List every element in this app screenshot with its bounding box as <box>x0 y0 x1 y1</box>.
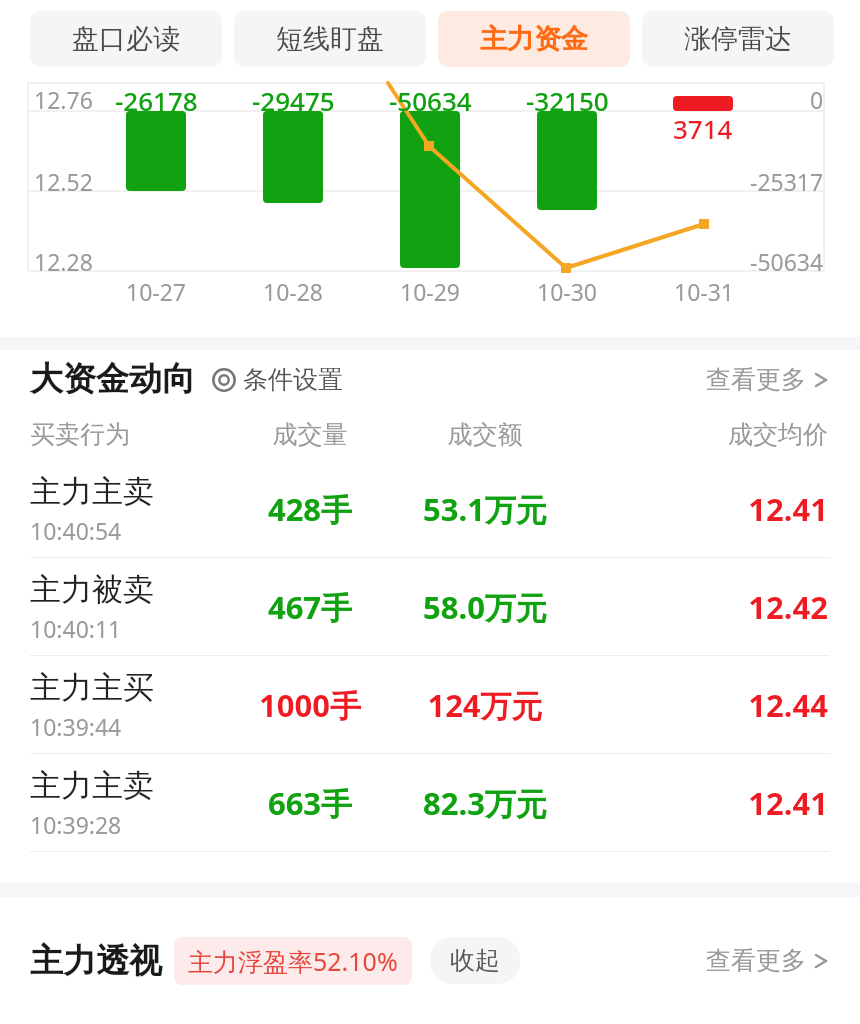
button[interactable]: 短线盯盘 <box>234 11 426 67</box>
button[interactable]: 涨停雷达 <box>642 11 834 67</box>
staticText: 成交量 <box>230 419 390 450</box>
staticText: 10:40:54 <box>30 515 122 546</box>
staticText: 查看更多 <box>706 945 806 976</box>
button[interactable]: 查看更多 <box>706 945 830 976</box>
staticText: -50634 <box>389 83 472 118</box>
button[interactable]: 主力浮盈率52.10% <box>174 937 412 985</box>
staticText: 12.52 <box>34 166 93 197</box>
staticText: 124万元 <box>390 684 580 726</box>
button[interactable]: 条件设置 <box>211 364 343 395</box>
staticText: 主力主卖 <box>30 766 154 805</box>
button[interactable]: 查看更多 <box>706 364 830 395</box>
staticText: -29475 <box>252 83 335 118</box>
staticText: 短线盯盘 <box>276 22 384 56</box>
staticText: 成交额 <box>390 419 580 450</box>
button[interactable]: 主力主买 <box>0 656 860 754</box>
button[interactable]: 主力被卖 <box>0 558 860 656</box>
staticText: 663手 <box>230 782 390 824</box>
staticText: -25317 <box>750 166 824 197</box>
staticText: 58.0万元 <box>390 586 580 628</box>
staticText: 10:39:28 <box>30 809 122 840</box>
staticText: -26178 <box>115 83 198 118</box>
staticText: -32150 <box>526 83 609 118</box>
staticText: 10-29 <box>400 276 461 307</box>
staticText: 12.76 <box>34 84 93 115</box>
staticText: 收起 <box>450 945 500 976</box>
staticText: 53.1万元 <box>390 488 580 530</box>
staticText: 12.28 <box>34 246 93 277</box>
staticText: 10-31 <box>674 276 735 307</box>
button[interactable]: 主力资金 <box>438 11 630 67</box>
staticText: 3714 <box>673 111 733 146</box>
staticText: 主力浮盈率52.10% <box>188 944 398 978</box>
staticText: 查看更多 <box>706 364 806 395</box>
staticText: 主力被卖 <box>30 570 154 609</box>
staticText: 1000手 <box>230 684 390 726</box>
other: More <box>814 953 830 969</box>
staticText: 10:39:44 <box>30 711 122 742</box>
staticText: 成交均价 <box>580 419 828 450</box>
button[interactable]: 盘口必读 <box>30 11 222 67</box>
button[interactable]: 收起 <box>430 937 520 984</box>
button[interactable]: 主力主卖 <box>0 754 860 852</box>
staticText: 467手 <box>230 586 390 628</box>
staticText: 主力透视 <box>30 940 162 982</box>
staticText: 12.44 <box>580 684 828 726</box>
staticText: 条件设置 <box>243 364 343 395</box>
staticText: 10-27 <box>126 276 187 307</box>
staticText: 大资金动向 <box>30 358 195 400</box>
staticText: 10-28 <box>263 276 324 307</box>
staticText: 买卖行为 <box>30 419 230 450</box>
staticText: 428手 <box>230 488 390 530</box>
staticText: 盘口必读 <box>72 22 180 56</box>
staticText: 82.3万元 <box>390 782 580 824</box>
staticText: 涨停雷达 <box>684 22 792 56</box>
staticText: -50634 <box>750 246 824 277</box>
button[interactable]: 主力主卖 <box>0 460 860 558</box>
staticText: 主力主买 <box>30 668 154 707</box>
staticText: 12.41 <box>580 488 828 530</box>
staticText: 0 <box>810 84 824 115</box>
staticText: 主力主卖 <box>30 472 154 511</box>
staticText: 10-30 <box>537 276 598 307</box>
staticText: 12.42 <box>580 586 828 628</box>
staticText: 12.41 <box>580 782 828 824</box>
staticText: 10:40:11 <box>30 613 122 644</box>
staticText: 主力资金 <box>480 22 588 56</box>
